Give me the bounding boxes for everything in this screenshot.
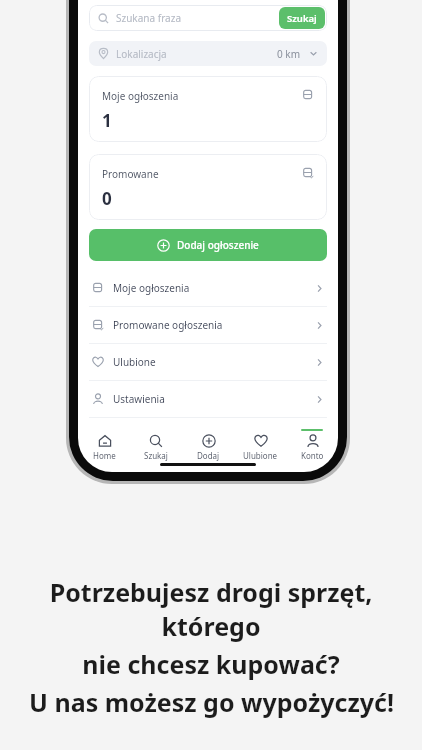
staticText: Szukana fraza — [116, 11, 181, 25]
staticText: 0 — [102, 187, 112, 210]
staticText: Ustawienia — [113, 392, 165, 406]
staticText: Moje ogłoszenia — [113, 281, 190, 295]
staticText: Dodaj ogłoszenie — [177, 238, 259, 252]
button[interactable]: Moje ogłoszenia — [89, 76, 327, 142]
staticText: Lokalizacja — [116, 47, 167, 61]
button[interactable]: Promowane ogłoszenia — [78, 307, 338, 343]
staticText: Ulubione — [243, 450, 278, 461]
button[interactable]: Promowane — [89, 154, 327, 220]
staticText: Promowane ogłoszenia — [113, 318, 223, 332]
button[interactable]: Szukaj — [279, 7, 325, 29]
staticText: Potrzebujesz drogi sprzęt, którego — [0, 575, 422, 643]
button[interactable]: Dodaj ogłoszenie — [89, 229, 327, 261]
button[interactable]: Konto — [286, 429, 338, 463]
staticText: Szukaj — [144, 450, 168, 461]
staticText: Konto — [301, 450, 324, 461]
button[interactable]: Szukana fraza — [89, 5, 327, 31]
button[interactable]: Szukaj — [130, 429, 182, 463]
staticText: Dodaj — [197, 450, 220, 461]
staticText: nie chcesz kupować? — [82, 647, 340, 681]
button[interactable]: Dodaj — [182, 429, 234, 463]
staticText: U nas możesz go wypożyczyć! — [29, 685, 394, 719]
button[interactable]: Home — [78, 429, 130, 463]
staticText: 1 — [102, 109, 112, 132]
button[interactable]: Ustawienia — [78, 381, 338, 417]
button[interactable]: Lokalizacja — [89, 41, 327, 66]
staticText: Promowane — [102, 167, 159, 181]
staticText: 0 km — [277, 47, 301, 61]
staticText: Home — [93, 450, 116, 461]
staticText: Szukaj — [287, 12, 317, 25]
button[interactable]: Moje ogłoszenia — [78, 270, 338, 306]
button[interactable]: Ulubione — [78, 344, 338, 380]
staticText: Moje ogłoszenia — [102, 89, 179, 103]
button[interactable]: Ulubione — [234, 429, 286, 463]
staticText: Ulubione — [113, 355, 156, 369]
